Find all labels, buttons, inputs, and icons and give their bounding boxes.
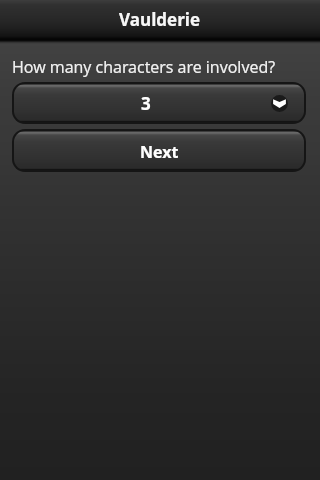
staticText: Vaulderie <box>119 8 201 31</box>
button[interactable]: Next <box>12 129 306 172</box>
staticText: Next <box>140 141 179 163</box>
staticText: How many characters are involved? <box>12 56 276 78</box>
staticText: 3 <box>141 92 151 115</box>
other: Open dropdown <box>267 82 307 124</box>
button[interactable]: 3 <box>12 82 306 124</box>
